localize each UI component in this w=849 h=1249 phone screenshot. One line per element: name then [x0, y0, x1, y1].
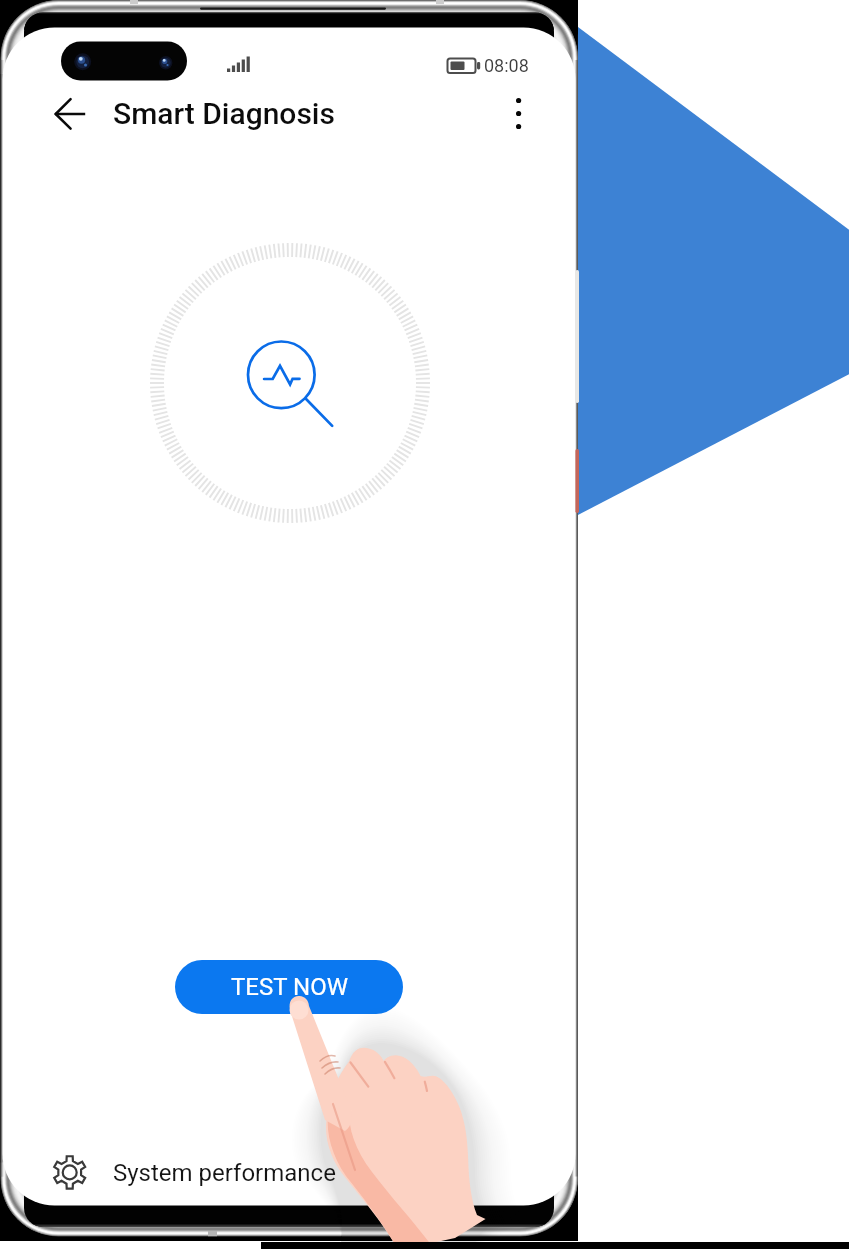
button[interactable]: Back: [44, 90, 96, 138]
staticText: 08:08: [484, 55, 529, 76]
button[interactable]: TEST NOW: [175, 960, 403, 1014]
button[interactable]: System performance: [40, 1142, 440, 1204]
staticText: TEST NOW: [231, 973, 348, 1001]
staticText: System performance: [113, 1159, 336, 1187]
staticText: Smart Diagnosis: [113, 96, 335, 131]
button[interactable]: More options: [495, 92, 543, 140]
